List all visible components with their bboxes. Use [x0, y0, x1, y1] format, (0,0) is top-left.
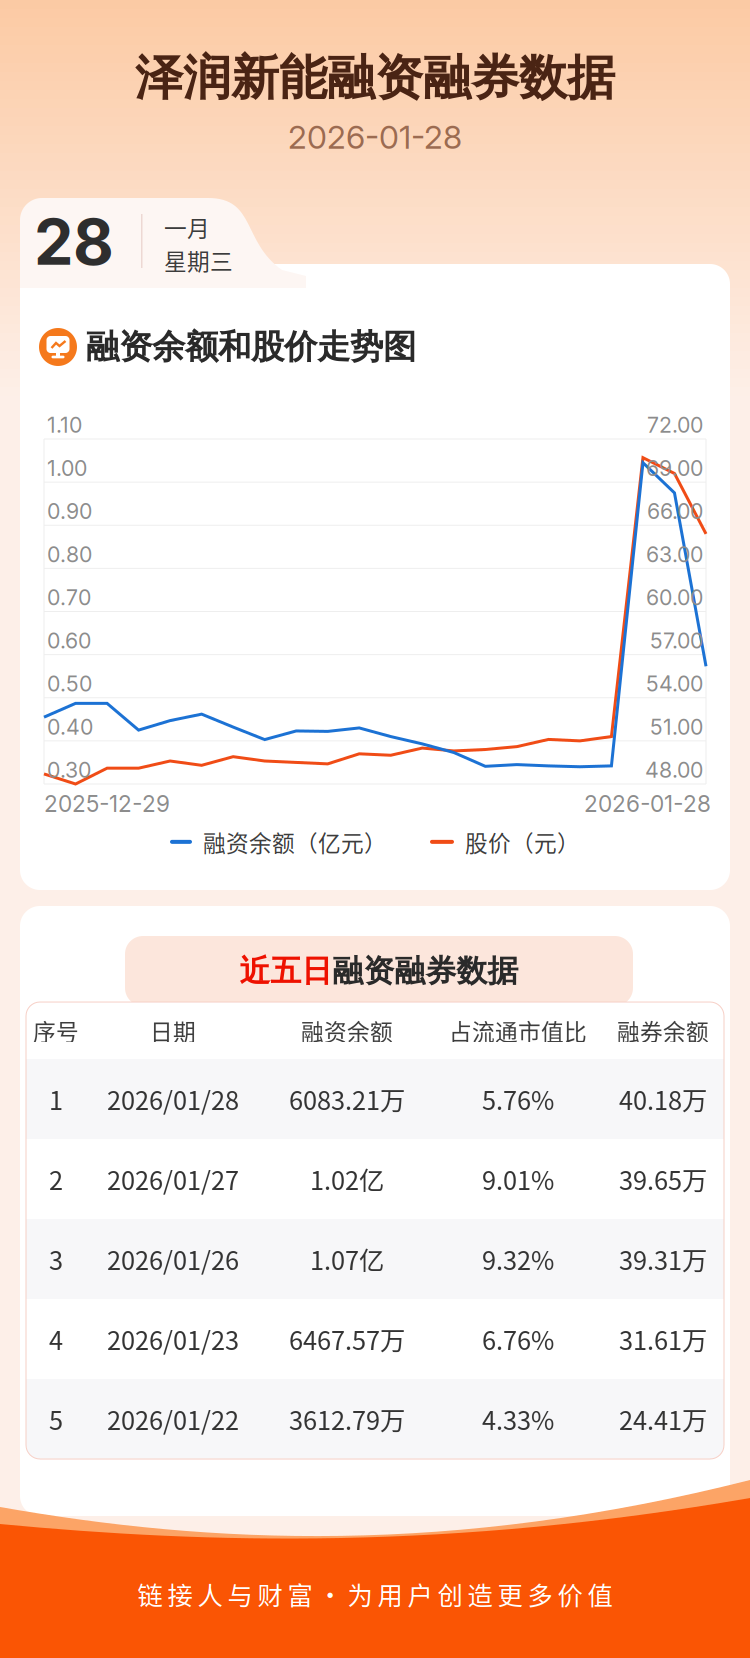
staticText: 6.76%: [482, 1321, 554, 1357]
staticText: 51.00: [650, 714, 703, 740]
staticText: 2025-12-29: [44, 790, 170, 817]
staticText: 2026/01/23: [107, 1321, 239, 1357]
staticText: 1.07亿: [310, 1241, 384, 1277]
staticText: 1.02亿: [310, 1161, 384, 1197]
staticText: 39.65万: [619, 1161, 707, 1197]
staticText: 72.00: [647, 412, 703, 438]
staticText: 1.00: [47, 455, 87, 481]
staticText: 融资融券数据: [332, 952, 518, 990]
staticText: 5.76%: [482, 1081, 554, 1117]
staticText: 0.40: [47, 714, 93, 740]
staticText: 28: [34, 204, 114, 280]
staticText: 1: [49, 1081, 63, 1117]
staticText: 60.00: [646, 585, 703, 610]
staticText: 链接人与财富·为用户创造更多价值: [137, 1576, 612, 1612]
staticText: 融资余额（亿元）: [203, 825, 387, 858]
staticText: 2026/01/22: [107, 1401, 239, 1437]
staticText: 9.01%: [482, 1161, 554, 1197]
staticText: 日期: [150, 1014, 196, 1047]
staticText: 3612.79万: [289, 1401, 405, 1437]
staticText: 2026-01-28: [288, 118, 462, 156]
staticText: 股价（元）: [465, 825, 580, 858]
staticText: 2026-01-28: [584, 790, 711, 817]
staticText: 0.30: [47, 757, 91, 783]
staticText: 2026/01/28: [107, 1081, 239, 1117]
staticText: 0.70: [47, 585, 91, 610]
staticText: 泽润新能融资融券数据: [135, 48, 615, 108]
staticText: 4: [49, 1321, 63, 1357]
staticText: 40.18万: [619, 1081, 707, 1117]
staticText: 3: [49, 1241, 63, 1277]
staticText: 近五日: [239, 952, 332, 990]
staticText: 0.90: [47, 498, 92, 524]
staticText: 0.50: [47, 671, 92, 697]
staticText: 31.61万: [619, 1321, 707, 1357]
staticText: 5: [49, 1401, 63, 1437]
staticText: 66.00: [647, 498, 703, 524]
staticText: 融资余额: [301, 1014, 393, 1047]
staticText: 6467.57万: [289, 1321, 405, 1357]
staticText: 融券余额: [617, 1014, 709, 1047]
staticText: 2: [49, 1161, 63, 1197]
staticText: 54.00: [646, 671, 703, 697]
staticText: 24.41万: [619, 1401, 707, 1437]
staticText: 星期三: [164, 244, 233, 276]
staticText: 序号: [33, 1014, 79, 1047]
staticText: 1.10: [47, 412, 82, 438]
staticText: 2026/01/27: [107, 1161, 239, 1197]
staticText: 4.33%: [482, 1401, 554, 1437]
staticText: 57.00: [650, 628, 703, 653]
staticText: 69.00: [646, 455, 703, 481]
staticText: 占流通市值比: [449, 1014, 587, 1047]
staticText: 融资余额和股价走势图: [86, 326, 416, 368]
staticText: 48.00: [645, 757, 703, 783]
staticText: 0.80: [47, 541, 92, 567]
staticText: 2026/01/26: [107, 1241, 239, 1277]
staticText: 0.60: [47, 628, 91, 653]
staticText: 6083.21万: [289, 1081, 405, 1117]
staticText: 9.32%: [482, 1241, 554, 1277]
staticText: 63.00: [646, 541, 703, 567]
staticText: 一月: [164, 211, 210, 243]
staticText: 39.31万: [619, 1241, 707, 1277]
